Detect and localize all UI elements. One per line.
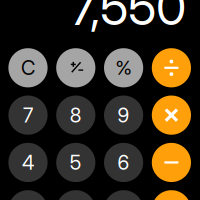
staticText: C	[21, 56, 35, 80]
button[interactable]: Subtract	[152, 143, 191, 182]
staticText: %	[116, 56, 132, 79]
button[interactable]: Add	[152, 190, 191, 200]
staticText: 4	[22, 150, 34, 175]
button[interactable]: 5	[56, 143, 95, 182]
button[interactable]: 1	[8, 190, 48, 200]
button[interactable]: %	[104, 48, 143, 87]
button[interactable]: Divide	[152, 48, 191, 87]
button[interactable]: C	[8, 48, 48, 87]
button[interactable]: 8	[56, 95, 95, 135]
staticText: 7,550	[71, 0, 186, 37]
button[interactable]: 2	[56, 190, 95, 200]
button[interactable]: Plus Minus	[56, 48, 95, 87]
button[interactable]: 9	[104, 95, 143, 135]
staticText: 8	[70, 103, 82, 127]
button[interactable]: 6	[104, 143, 143, 182]
staticText: 9	[118, 103, 130, 127]
staticText: 5	[70, 150, 82, 175]
button[interactable]: 3	[104, 190, 143, 200]
staticText: 6	[118, 150, 130, 175]
staticText: 7	[23, 103, 33, 127]
button[interactable]: 4	[8, 143, 48, 182]
button[interactable]: 7	[8, 95, 48, 135]
button[interactable]: Multiply	[152, 95, 191, 135]
